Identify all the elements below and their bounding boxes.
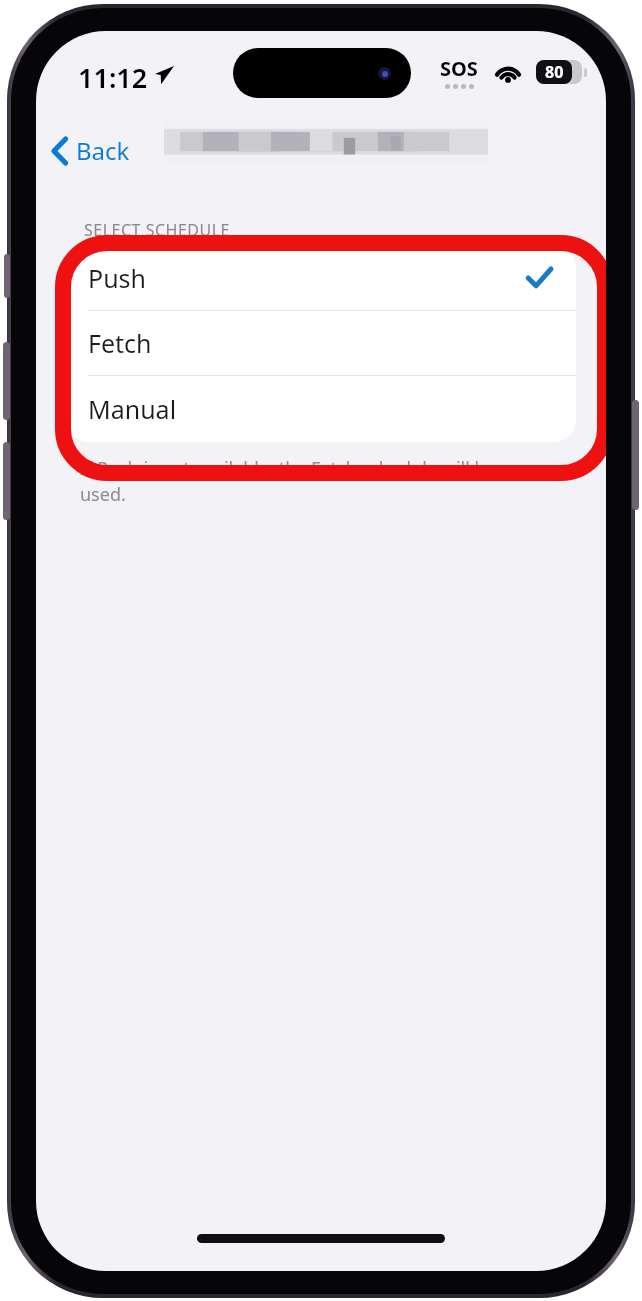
button[interactable]: Back: [48, 128, 134, 173]
staticText: If Push is not available, the Fetch sche…: [80, 456, 510, 507]
button[interactable]: Manual: [66, 376, 576, 442]
button[interactable]: Push: [66, 246, 576, 311]
button[interactable]: Fetch: [66, 311, 576, 376]
staticText: SOS: [440, 55, 478, 82]
staticText: 11:12: [78, 59, 148, 96]
staticText: Push: [88, 261, 147, 295]
staticText: Manual: [88, 392, 177, 426]
staticText: Fetch: [88, 326, 152, 360]
staticText: SELECT SCHEDULE: [84, 219, 230, 241]
staticText: 80: [545, 61, 564, 83]
staticText: Back: [76, 134, 130, 167]
